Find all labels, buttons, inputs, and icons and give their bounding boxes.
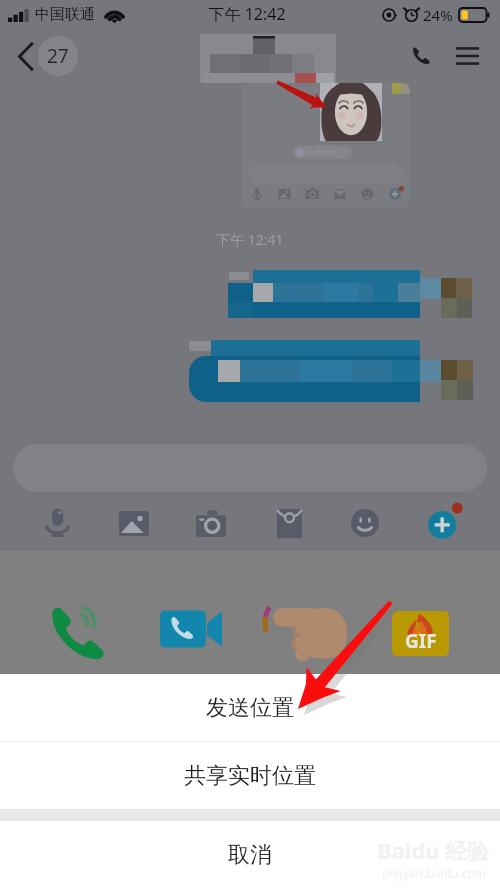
staticText: 发送位置 — [206, 694, 294, 722]
button[interactable]: Emoji — [346, 504, 384, 542]
staticText: 27 — [47, 43, 69, 69]
staticText: Baidu 经验 — [377, 835, 490, 865]
button[interactable]: GIF — [392, 611, 449, 656]
button[interactable]: Gallery — [115, 504, 153, 542]
button[interactable]: Back — [14, 33, 82, 79]
button[interactable]: 取消 — [0, 821, 500, 889]
staticText: jingyan.baidu.com — [382, 865, 486, 881]
button[interactable]: Camera — [192, 504, 230, 542]
staticText: GIF — [405, 628, 437, 654]
button[interactable]: Video call — [160, 603, 228, 655]
staticText: 共享实时位置 — [184, 762, 316, 790]
button[interactable]: 共享实时位置 — [0, 742, 500, 809]
staticText: 下午 12:41 — [216, 230, 284, 249]
button[interactable]: Voice — [38, 504, 76, 542]
button[interactable]: Poke — [265, 601, 347, 661]
staticText: 下午 12:42 — [208, 3, 286, 25]
button[interactable]: More — [422, 498, 464, 540]
staticText: 中国联通 — [35, 5, 95, 24]
staticText: 24% — [423, 5, 453, 25]
button[interactable]: Red packet — [270, 504, 308, 542]
button[interactable]: Call — [402, 37, 440, 75]
staticText: 取消 — [228, 841, 272, 869]
button[interactable]: 发送位置 — [0, 674, 500, 741]
button[interactable]: Voice call — [42, 595, 114, 667]
button[interactable]: Menu — [448, 37, 486, 75]
